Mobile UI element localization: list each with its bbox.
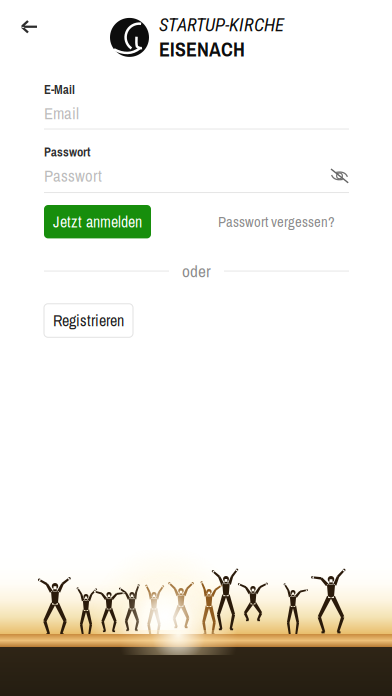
staticText: E-Mail bbox=[44, 81, 75, 98]
staticText: Registrieren bbox=[53, 310, 124, 331]
button[interactable]: Registrieren bbox=[44, 304, 133, 337]
staticText: Email bbox=[44, 102, 79, 125]
button[interactable]: Passwort anzeigen bbox=[330, 168, 349, 183]
button[interactable]: Jetzt anmelden bbox=[44, 205, 151, 238]
staticText: Passwort vergessen? bbox=[218, 212, 335, 232]
button[interactable]: Zurück bbox=[7, 5, 51, 49]
staticText: oder bbox=[182, 259, 211, 283]
staticText: Passwort bbox=[44, 165, 102, 187]
button[interactable]: Passwort vergessen? bbox=[218, 212, 335, 232]
staticText: STARTUP-KIRCHE bbox=[159, 14, 284, 36]
staticText: EISENACH bbox=[159, 36, 245, 63]
staticText: Jetzt anmelden bbox=[53, 211, 142, 232]
staticText: Passwort bbox=[44, 143, 90, 161]
